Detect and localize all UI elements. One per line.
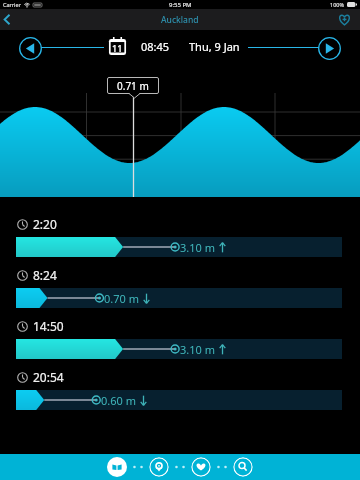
button[interactable]: Next day xyxy=(318,37,341,60)
button[interactable]: Guide xyxy=(107,457,127,477)
staticText: 3.10 m xyxy=(180,240,215,255)
staticText: 3.10 m xyxy=(180,342,215,357)
button[interactable]: Favourites xyxy=(191,457,211,477)
button[interactable]: 8:24 xyxy=(0,255,360,306)
staticText: 8:24 xyxy=(33,267,57,283)
button[interactable]: Previous day xyxy=(19,37,42,60)
button[interactable]: Search xyxy=(233,457,253,477)
button[interactable]: Locations xyxy=(149,457,169,477)
staticText: 100% xyxy=(330,1,345,8)
button[interactable]: 2:20 xyxy=(0,204,360,255)
staticText: 14:50 xyxy=(33,318,64,334)
staticText: Carrier xyxy=(3,1,21,8)
staticText: Auckland xyxy=(161,14,199,26)
staticText: 0.70 m xyxy=(104,291,139,306)
button[interactable]: 14:50 xyxy=(0,306,360,357)
staticText: 2:20 xyxy=(33,216,57,232)
staticText: 0.71 m xyxy=(117,79,149,93)
staticText: 9:55 PM xyxy=(169,1,192,9)
staticText: 0.60 m xyxy=(101,393,136,408)
button[interactable]: Back xyxy=(0,11,17,28)
staticText: Thu, 9 Jan xyxy=(189,39,240,54)
staticText: 11 xyxy=(112,42,123,54)
staticText: 08:45 xyxy=(141,39,170,54)
button[interactable]: Add to favourites xyxy=(334,10,354,30)
staticText: 20:54 xyxy=(33,369,64,385)
button[interactable]: 20:54 xyxy=(0,357,360,408)
